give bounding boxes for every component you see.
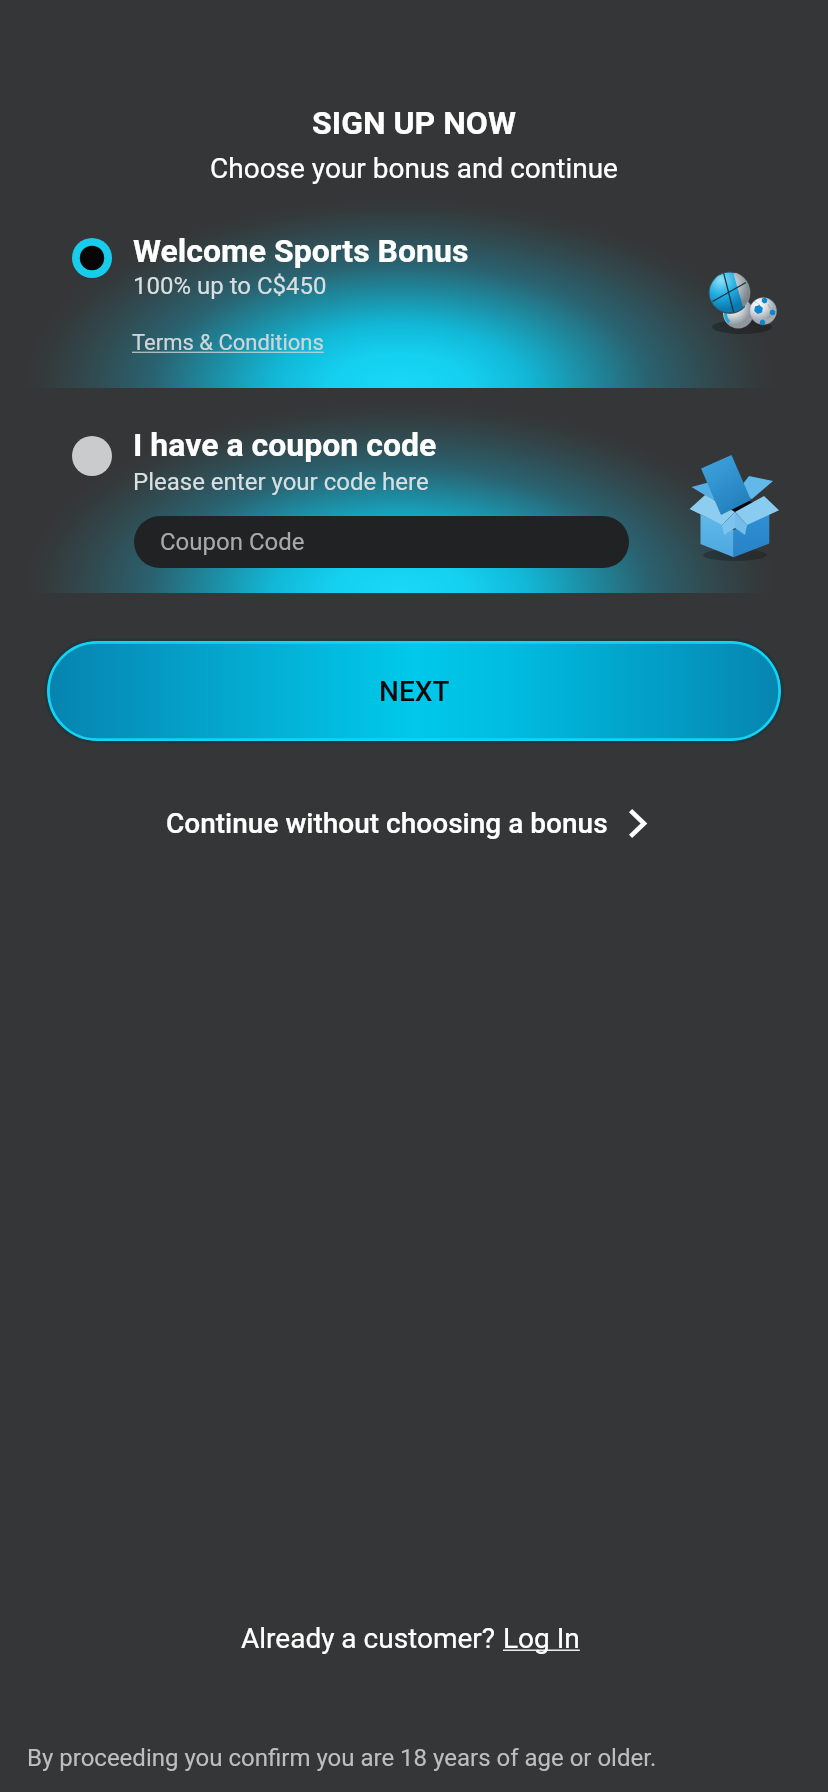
staticText: I have a coupon code [133,426,437,464]
button[interactable]: NEXT [47,641,781,741]
button[interactable]: Continue without choosing a bonus [166,800,648,846]
button[interactable]: Coupon Code [134,516,629,568]
staticText: NEXT [379,675,450,708]
staticText: Already a customer? [241,1622,503,1655]
staticText: Coupon Code [160,528,305,556]
staticText: By proceeding you confirm you are 18 yea… [27,1744,657,1772]
staticText: Welcome Sports Bonus [133,232,469,270]
staticText: Continue without choosing a bonus [166,807,608,840]
staticText: SIGN UP NOW [0,104,828,142]
button[interactable]: Already a customer? [241,1622,580,1655]
button[interactable]: Welcome Sports Bonus [0,197,828,388]
button[interactable]: Log In [503,1622,580,1655]
button[interactable]: I have a coupon code [0,400,828,593]
staticText: Please enter your code here [133,468,429,496]
staticText: Choose your bonus and continue [0,152,828,185]
staticText: 100% up to C$450 [133,272,327,300]
button[interactable]: Terms & Conditions [132,330,324,356]
